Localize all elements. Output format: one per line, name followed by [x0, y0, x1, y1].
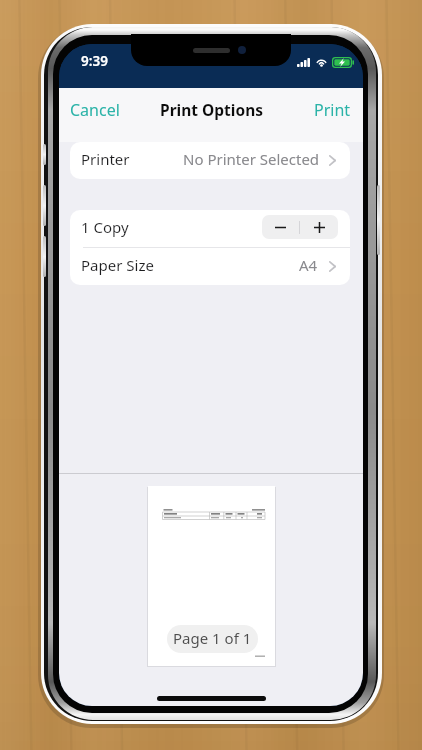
staticText: Print Options: [160, 99, 263, 120]
button[interactable]: Increase copies: [300, 215, 338, 239]
staticText: Printer: [81, 149, 130, 169]
button[interactable]: Printer: [70, 142, 350, 179]
staticText: A4: [299, 255, 318, 275]
staticText: Print: [314, 99, 351, 121]
staticText: 1 Copy: [81, 217, 129, 237]
staticText: Cancel: [70, 99, 120, 121]
staticText: No Printer Selected: [183, 149, 320, 169]
staticText: 9:39: [81, 52, 108, 70]
button[interactable]: Decrease copies: [262, 215, 299, 239]
staticText: Page 1 of 1: [173, 628, 252, 648]
button[interactable]: Page 1 of 1: [167, 625, 258, 653]
button[interactable]: Paper Size: [70, 248, 350, 285]
button[interactable]: Cancel: [62, 94, 128, 126]
staticText: Paper Size: [81, 255, 154, 275]
button[interactable]: Print: [306, 94, 359, 126]
